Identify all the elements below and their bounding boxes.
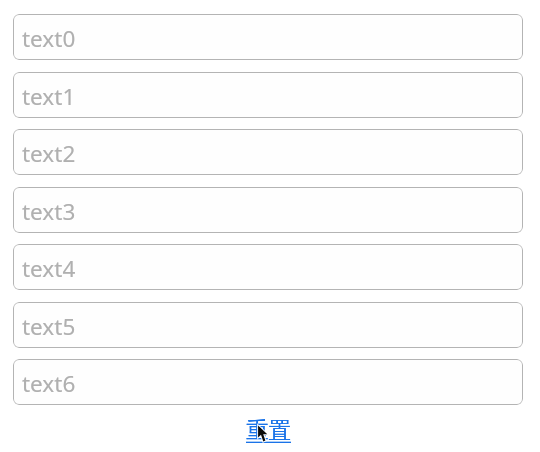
button[interactable]: text3 — [13, 187, 523, 233]
staticText: 重置 — [246, 416, 291, 444]
staticText: text4 — [22, 253, 76, 284]
button[interactable]: text2 — [13, 129, 523, 175]
staticText: 重置 — [246, 416, 291, 444]
staticText: text1 — [22, 81, 76, 112]
button[interactable]: text6 — [13, 359, 523, 405]
button[interactable]: text0 — [13, 14, 523, 60]
staticText: text5 — [22, 311, 76, 342]
button[interactable]: text1 — [13, 72, 523, 118]
button[interactable]: text5 — [13, 302, 523, 348]
button[interactable]: text4 — [13, 244, 523, 290]
staticText: text3 — [22, 196, 76, 227]
button[interactable]: 重置 — [238, 410, 298, 450]
staticText: text6 — [22, 368, 76, 399]
staticText: text0 — [22, 23, 76, 54]
other: Pointer — [256, 424, 269, 443]
staticText: text2 — [22, 138, 76, 169]
